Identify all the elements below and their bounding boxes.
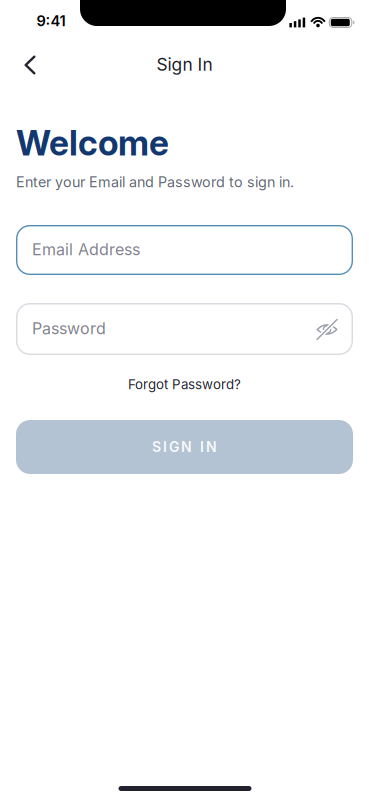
staticText: Sign In <box>156 54 212 75</box>
staticText: Email Address <box>32 240 140 259</box>
staticText: Enter your Email and Password to sign in… <box>16 173 294 191</box>
staticText: Forgot Password? <box>128 376 241 392</box>
staticText: 9:41 <box>36 12 65 30</box>
staticText: Welcome <box>16 122 169 164</box>
staticText: S I G N I N <box>152 438 217 455</box>
staticText: Password <box>32 319 106 338</box>
